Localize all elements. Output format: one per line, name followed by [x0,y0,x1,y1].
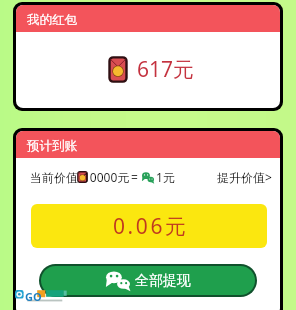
button[interactable]: 全部提现 [41,266,255,295]
staticText: 全部提现 [135,272,191,290]
staticText: 预计到账 [27,138,77,154]
staticText: GO [25,289,42,304]
staticText: 1元 [156,169,175,185]
staticText: = [131,169,138,185]
staticText: 当前价值 [30,170,78,185]
button[interactable]: 提升价值> [217,169,272,185]
staticText: 10000元 [83,169,130,185]
staticText: 我的红包 [27,12,77,28]
staticText: 617元 [137,55,195,84]
staticText: 提升价值> [217,169,272,185]
staticText: 0.06元 [113,212,189,241]
